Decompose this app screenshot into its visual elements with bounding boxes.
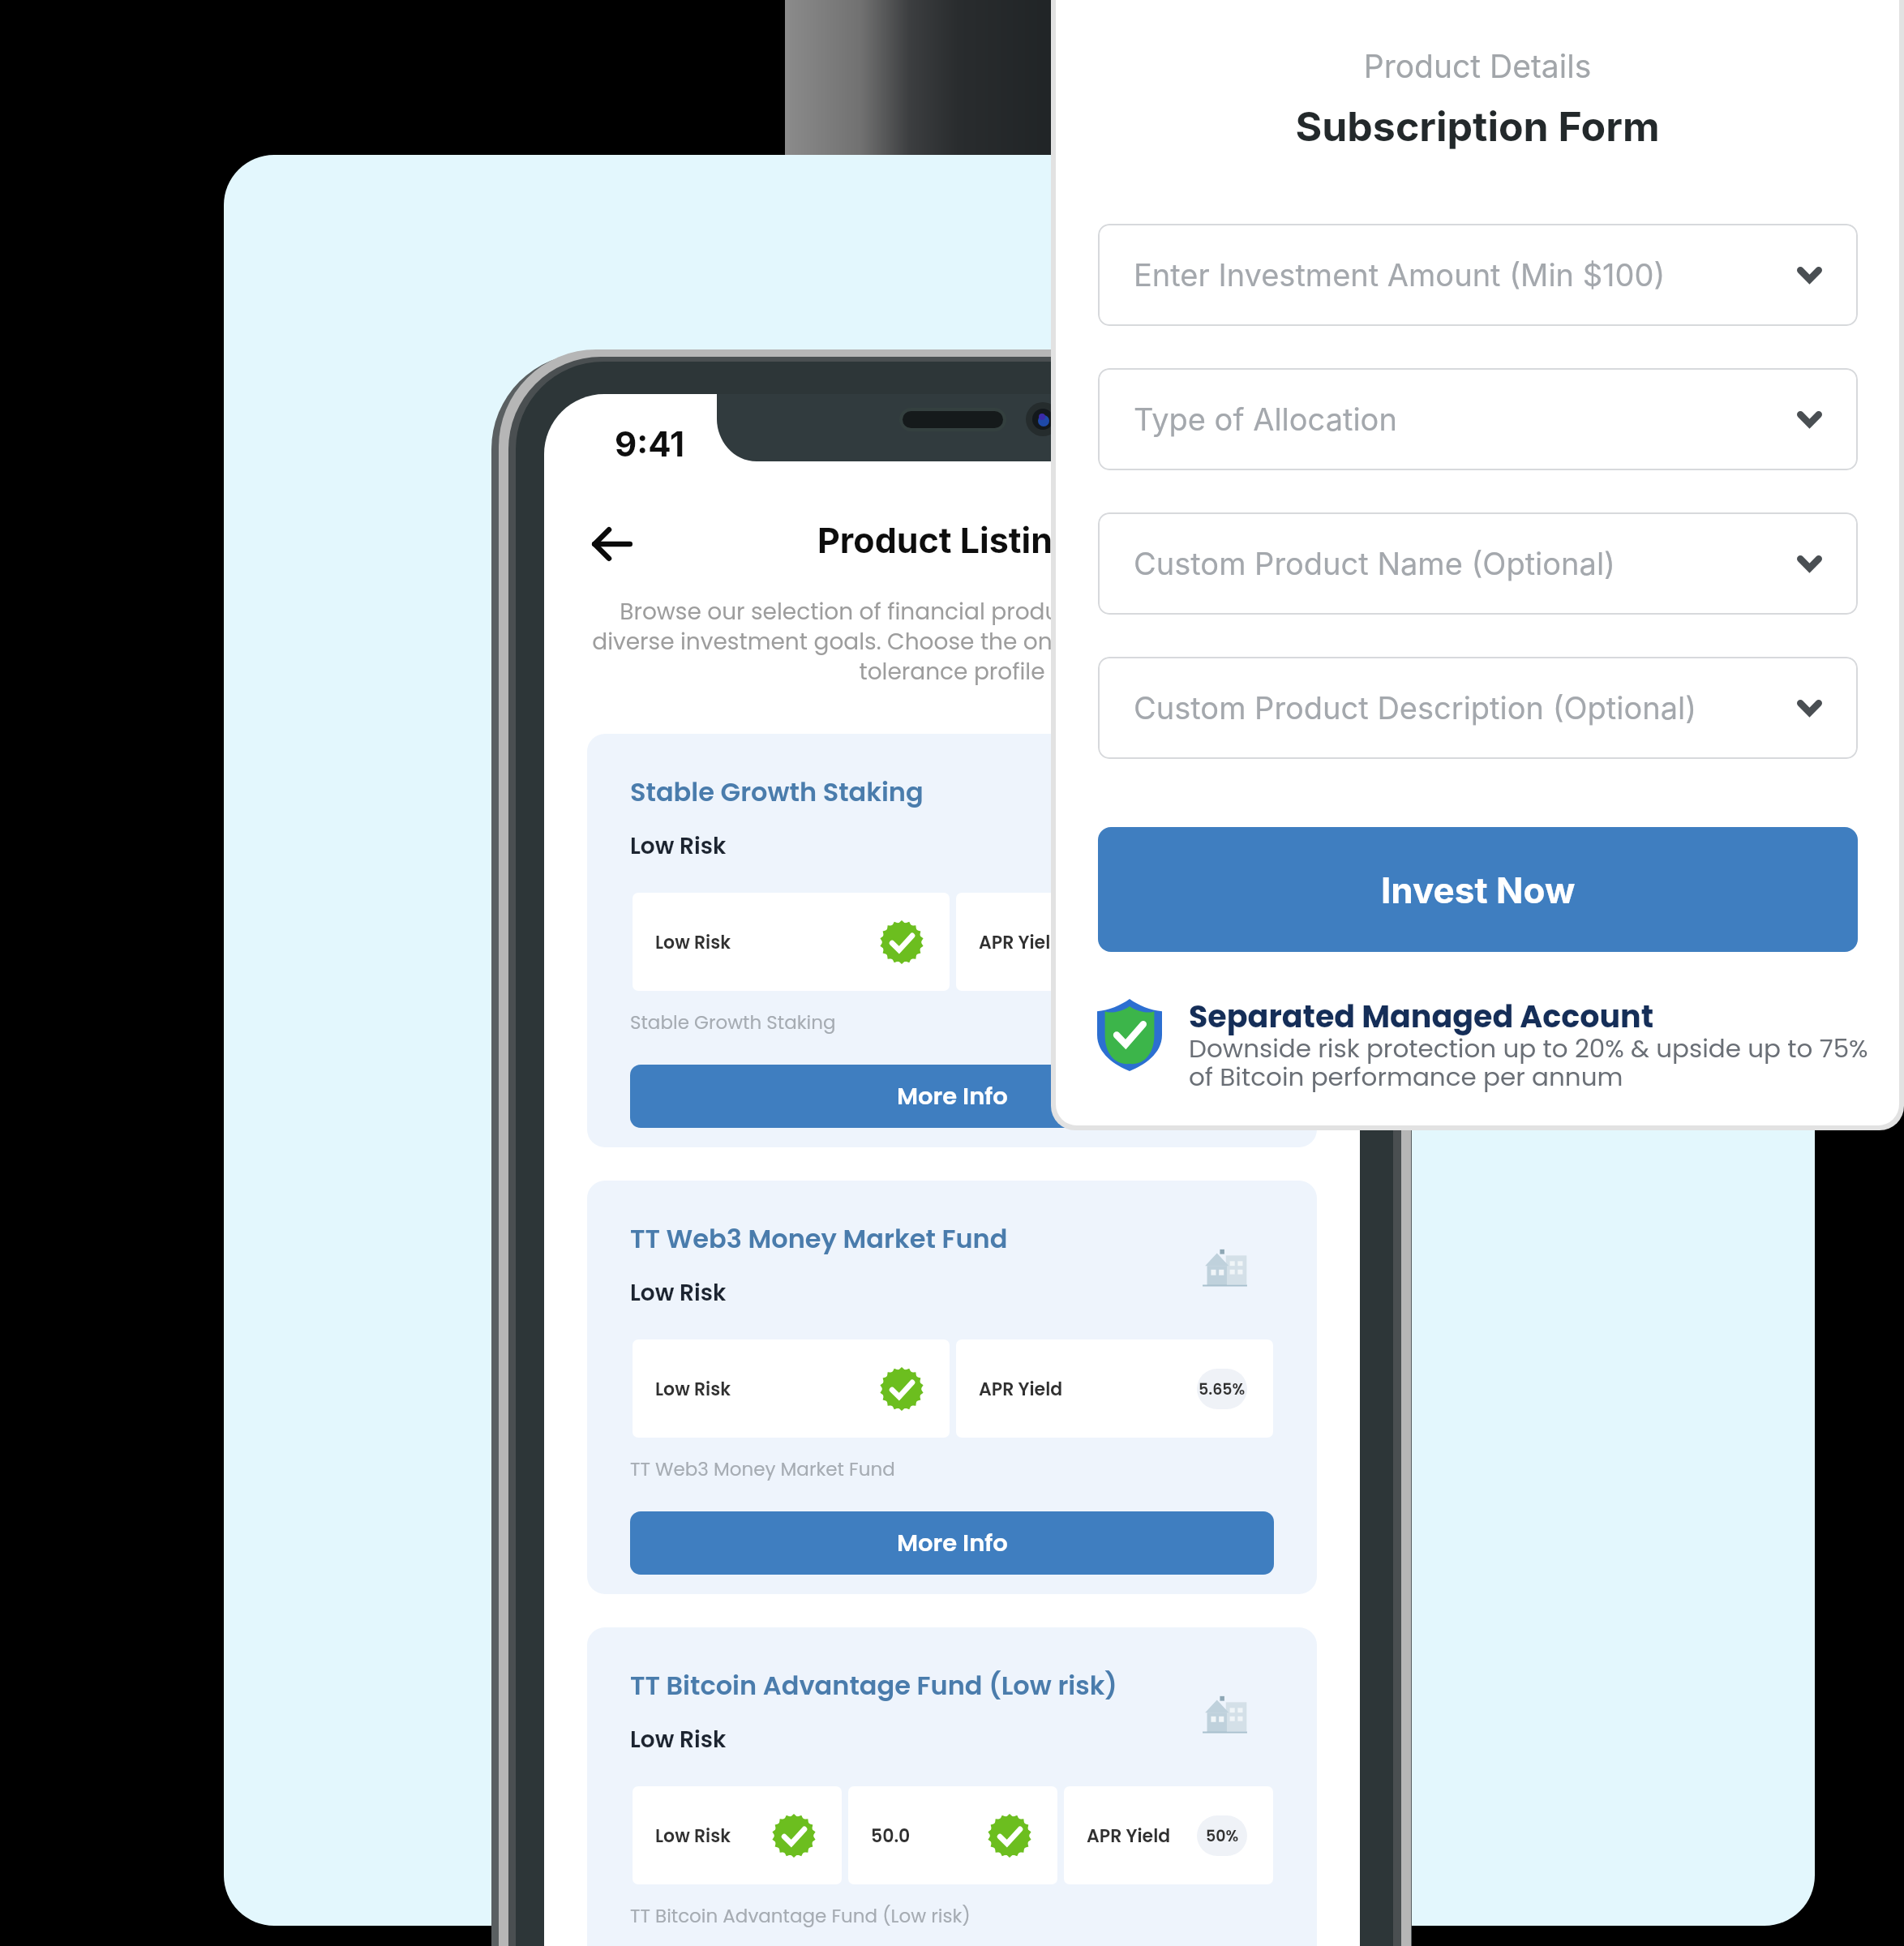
staticText: TT Web3 Money Market Fund [630,1220,1008,1257]
button[interactable]: Invest Now [1098,827,1858,952]
staticText: Browse our selection of financial produc… [544,596,1360,688]
staticText: Low Risk [655,1377,880,1402]
staticText: TT Web3 Money Market Fund [630,1456,895,1482]
staticText: Low Risk [630,830,727,862]
staticText: Type of Allocation [1134,401,1797,438]
staticText: APR Yield [1087,1824,1197,1849]
staticText: More Info [897,1527,1008,1560]
button[interactable]: Enter Investment Amount (Min $100) [1098,224,1858,326]
staticText: Separated Managed Account [1189,995,1654,1038]
staticText: Downside risk protection up to 20% & ups… [1189,1031,1868,1095]
staticText: Product Listing [817,519,1075,561]
staticText: Custom Product Name (Optional) [1134,545,1797,582]
button[interactable]: Back [568,500,656,588]
staticText: APR Yield [979,1377,1197,1402]
button[interactable]: More Info [630,1511,1274,1575]
button[interactable]: TT Bitcoin Advantage Fund (Low risk) [587,1627,1317,1946]
staticText: Low Risk [655,930,880,955]
staticText: 50% [1206,1825,1239,1847]
button[interactable]: TT Web3 Money Market Fund [587,1181,1317,1594]
staticText: TT Bitcoin Advantage Fund (Low risk) [630,1903,971,1929]
staticText: Custom Product Description (Optional) [1134,689,1797,727]
staticText: Subscription Form [1056,102,1899,151]
button[interactable]: Custom Product Description (Optional) [1098,657,1858,759]
staticText: Low Risk [630,1277,727,1309]
staticText: Invest Now [1381,868,1576,911]
button[interactable]: Stable Growth Staking [587,734,1317,1147]
staticText: 9:41 [615,423,685,465]
staticText: 5.65% [1199,1378,1246,1400]
staticText: Stable Growth Staking [630,1009,836,1035]
staticText: More Info [897,1080,1008,1113]
staticText: Product Details [1056,47,1899,85]
staticText: 5.65% [1199,932,1246,954]
staticText: Stable Growth Staking [630,774,924,810]
staticText: Low Risk [655,1824,772,1849]
staticText: 50.0 [871,1824,988,1849]
button[interactable]: Type of Allocation [1098,368,1858,470]
button[interactable]: More Info [630,1065,1274,1128]
staticText: TT Bitcoin Advantage Fund (Low risk) [630,1667,1117,1704]
staticText: Enter Investment Amount (Min $100) [1134,256,1797,294]
button[interactable]: Custom Product Name (Optional) [1098,512,1858,615]
staticText: APR Yield [979,930,1197,955]
staticText: Low Risk [630,1724,727,1755]
